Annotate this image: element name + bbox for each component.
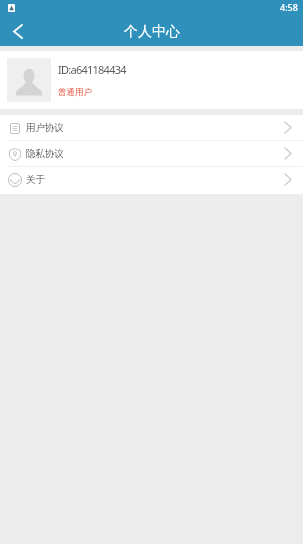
button[interactable]: ID:a641184434 — [0, 51, 303, 109]
staticText: 用户协议 — [26, 122, 64, 134]
button[interactable]: Back — [4, 17, 32, 45]
staticText: 普通用户 — [58, 87, 92, 98]
staticText: 4:58 — [280, 1, 298, 13]
staticText: 关于 — [26, 174, 45, 186]
button[interactable]: 隐私协议 — [0, 141, 303, 166]
staticText: 个人中心 — [124, 23, 180, 41]
button[interactable]: 关于 — [0, 167, 303, 192]
button[interactable]: 用户协议 — [0, 115, 303, 140]
staticText: 隐私协议 — [26, 148, 64, 160]
staticText: ID:a641184434 — [58, 62, 126, 77]
